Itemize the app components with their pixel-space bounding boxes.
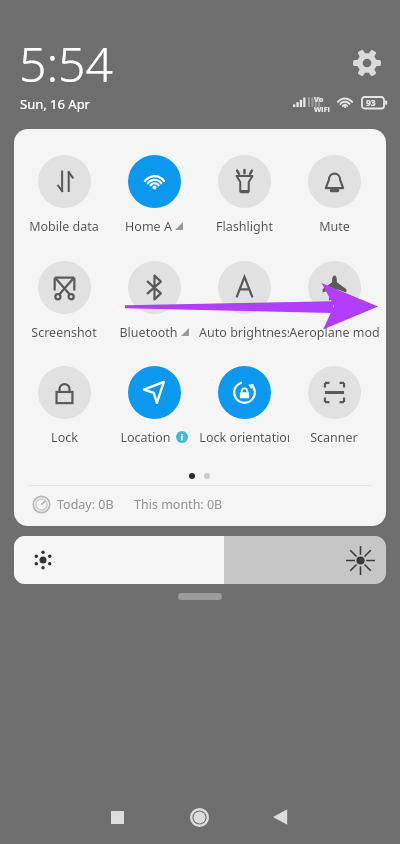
button[interactable]: Flashlight [199, 155, 289, 234]
button[interactable]: Brightness [14, 536, 386, 584]
button[interactable]: Lock orientation [199, 366, 289, 445]
button[interactable]: Location [109, 366, 199, 445]
staticText: 5:54 [19, 31, 113, 96]
button[interactable]: Settings [353, 49, 381, 77]
staticText: Lock [51, 429, 78, 445]
button[interactable]: Scanner [289, 366, 379, 445]
staticText: Auto brightness [199, 324, 289, 340]
staticText: Scanner [310, 429, 358, 445]
staticText: Bluetooth [119, 324, 178, 340]
staticText: Today: 0B [57, 496, 114, 513]
button[interactable]: Aeroplane mode [289, 261, 379, 340]
button[interactable]: Mute [289, 155, 379, 234]
staticText: Mute [319, 218, 350, 234]
button[interactable]: Home A [109, 155, 199, 234]
staticText: Aeroplane mode [289, 324, 379, 340]
staticText: Lock orientation [199, 429, 289, 445]
button[interactable]: Bluetooth [109, 261, 199, 340]
staticText: Flashlight [216, 218, 273, 234]
staticText: Home A [125, 218, 172, 234]
staticText: This month: 0B [134, 496, 223, 513]
staticText: Vo [314, 94, 324, 104]
button[interactable]: Back [259, 796, 301, 838]
staticText: Location [120, 429, 171, 445]
staticText: Mobile data [29, 218, 99, 234]
staticText: 93 [366, 97, 376, 109]
staticText: Sun, 16 Apr [20, 95, 90, 113]
button[interactable]: Auto brightness [199, 261, 289, 340]
button[interactable]: Screenshot [19, 261, 109, 340]
staticText: Screenshot [31, 324, 97, 340]
button[interactable]: Lock [19, 366, 109, 445]
staticText: WiFi [314, 104, 330, 114]
button[interactable]: Mobile data [19, 155, 109, 234]
button[interactable]: Recents [96, 796, 138, 838]
button[interactable]: Home [178, 796, 220, 838]
